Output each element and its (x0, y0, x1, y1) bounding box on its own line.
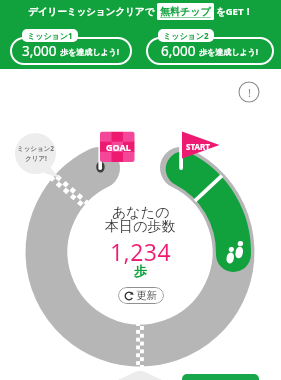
staticText: クリア! (25, 154, 47, 163)
button[interactable]: 更新 (118, 287, 164, 304)
staticText: ミッション2 (163, 30, 209, 41)
staticText: 更新 (136, 289, 157, 302)
staticText: ミッション2 (17, 144, 54, 153)
button[interactable]: Action (182, 374, 259, 380)
staticText: デイリーミッションクリアで (28, 6, 155, 18)
staticText: 歩を達成しよう! (60, 46, 120, 57)
staticText: START (186, 141, 210, 152)
staticText: 6,000 (161, 42, 196, 60)
button[interactable]: ミッション2 (15, 133, 56, 174)
staticText: 3,000 (22, 42, 57, 60)
staticText: ! (248, 85, 251, 100)
staticText: をGET！ (216, 5, 253, 18)
staticText: 本日の歩数 (105, 218, 176, 236)
button[interactable]: 3,000 (10, 29, 132, 65)
staticText: ミッション1 (27, 30, 73, 41)
staticText: GOAL (106, 141, 131, 153)
staticText: 歩 (134, 263, 147, 279)
staticText: 歩を達成しよう! (199, 46, 259, 57)
button[interactable]: 6,000 (146, 29, 274, 65)
button[interactable]: Start (176, 129, 222, 171)
staticText: 1,234 (110, 236, 172, 267)
button[interactable]: Goal (95, 129, 137, 171)
staticText: あなたの (112, 204, 170, 222)
button[interactable]: Information (238, 81, 260, 103)
staticText: 無料チップ (160, 5, 211, 18)
